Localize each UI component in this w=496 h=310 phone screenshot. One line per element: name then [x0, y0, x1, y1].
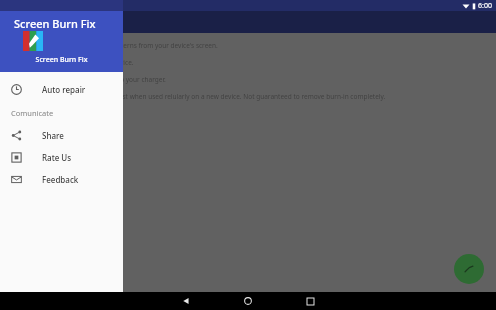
staticText: Feedback	[42, 174, 79, 185]
staticText: Screen Burn Fix	[14, 16, 96, 31]
staticText: Removes or reduces burned in patterns fr…	[16, 41, 486, 50]
staticText: Set the duration to run on your device.	[16, 58, 486, 67]
button[interactable]: Feedback	[0, 168, 123, 190]
button[interactable]: Recents	[301, 292, 319, 310]
staticText: Screen Burn Fix	[0, 55, 123, 65]
button[interactable]: Back	[177, 292, 195, 310]
staticText: 6:00	[478, 1, 492, 11]
staticText: Rate Us	[42, 152, 72, 163]
staticText: Comunicate	[11, 108, 54, 118]
staticText: Share	[42, 130, 64, 141]
button[interactable]: Auto repair	[0, 78, 123, 100]
staticText: For long sessions please connect to your…	[16, 75, 486, 84]
button[interactable]: Start repair	[454, 254, 484, 284]
staticText: This tool is experimental. Works best wh…	[16, 92, 486, 101]
button[interactable]: Share	[0, 124, 123, 146]
staticText: Auto repair	[42, 84, 86, 95]
button[interactable]: Rate Us	[0, 146, 123, 168]
button[interactable]: Home	[239, 292, 257, 310]
